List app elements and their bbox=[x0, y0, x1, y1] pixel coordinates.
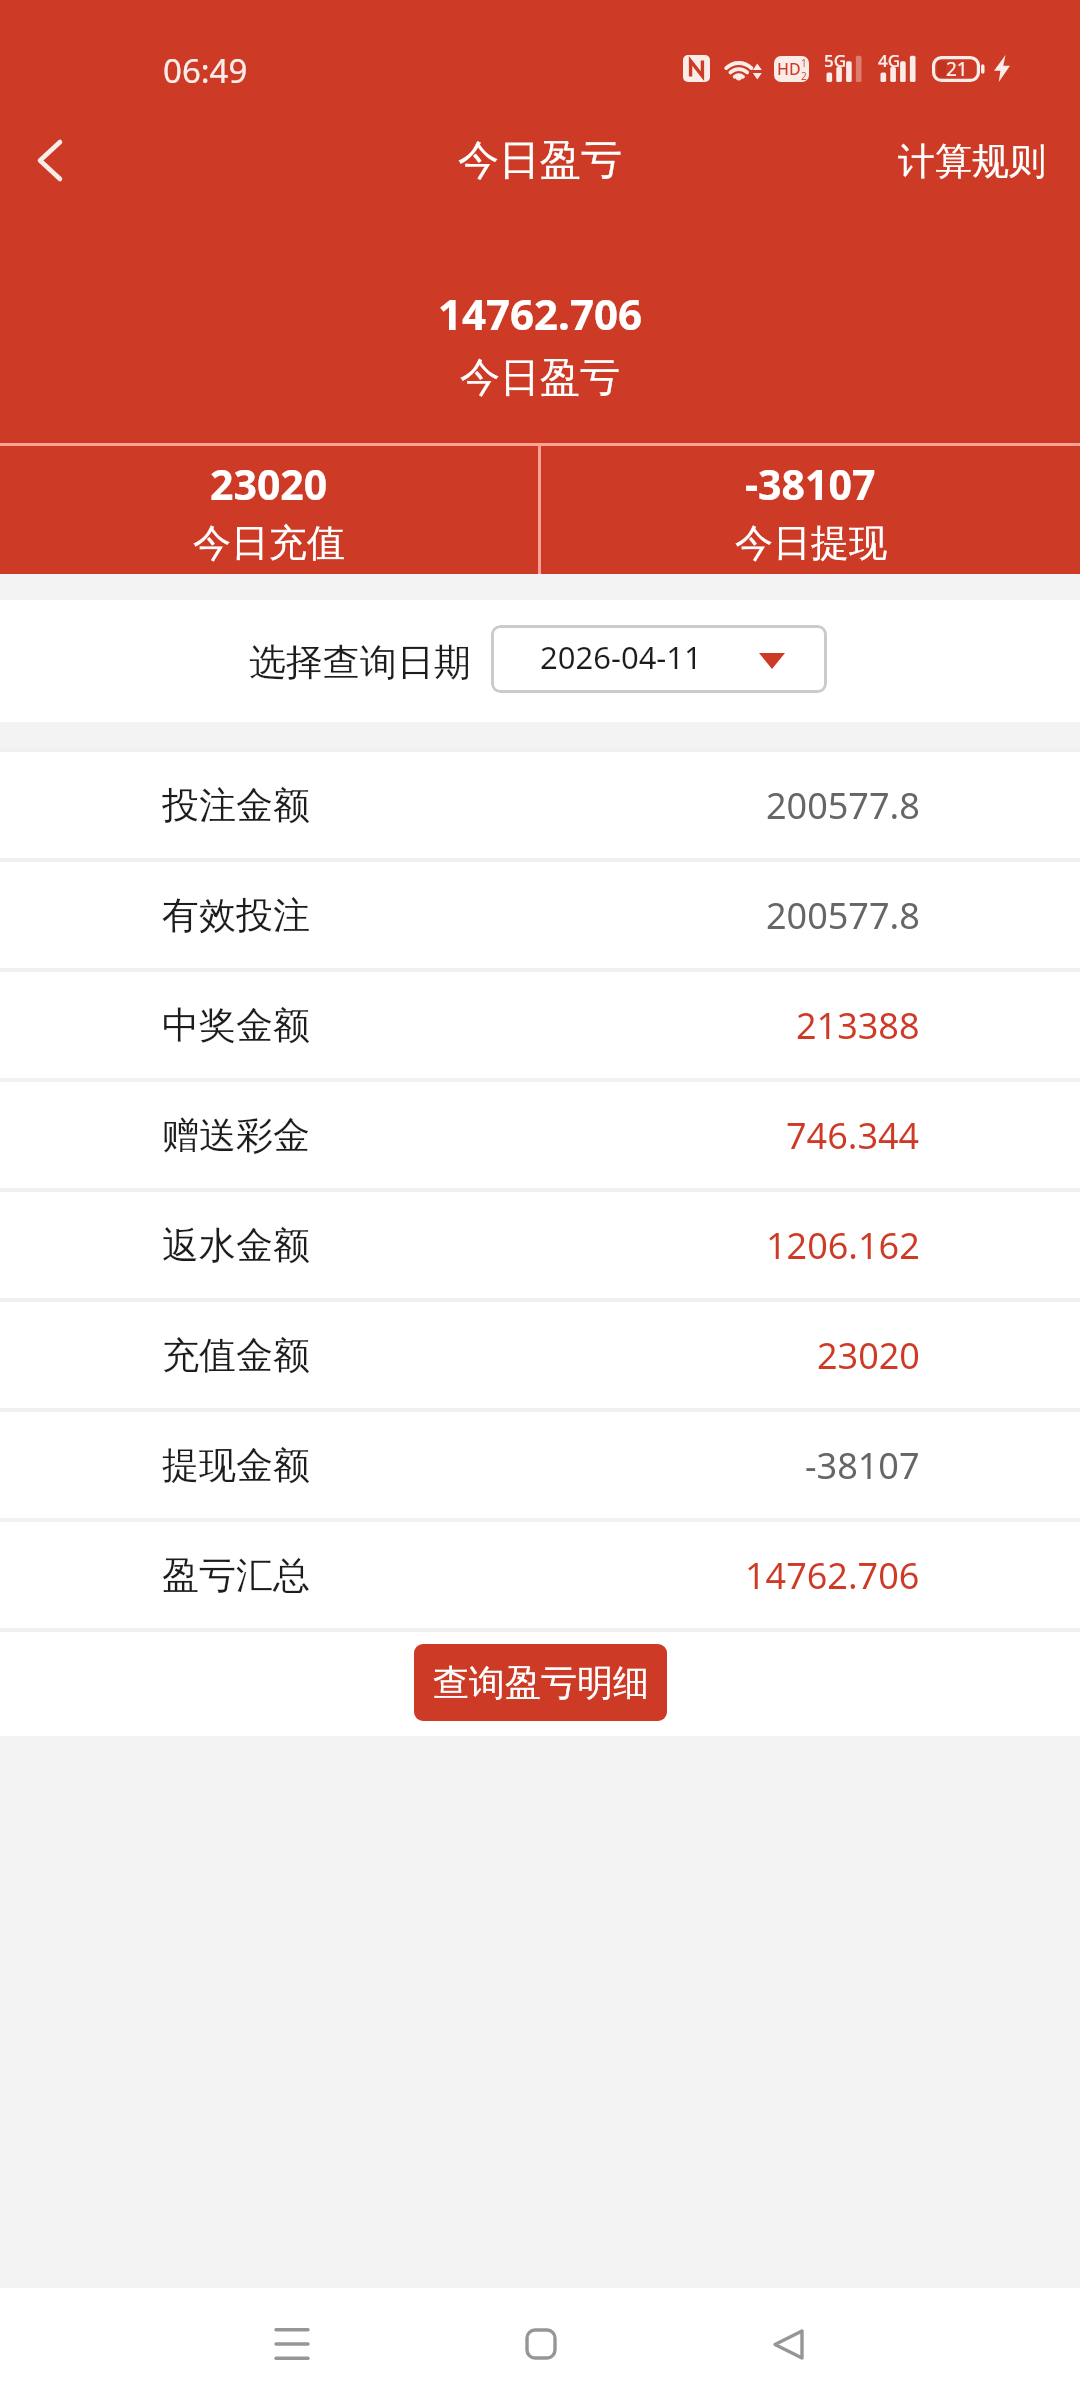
button[interactable]: 计算规则 bbox=[898, 106, 1046, 216]
button[interactable]: -38107 bbox=[541, 446, 1080, 574]
staticText: 23020 bbox=[210, 456, 328, 512]
staticText: 有效投注 bbox=[162, 892, 310, 939]
staticText: 今日盈亏 bbox=[460, 352, 620, 402]
staticText: 23020 bbox=[817, 1331, 920, 1380]
button[interactable]: 2026-04-11 bbox=[491, 625, 827, 693]
staticText: 14762.706 bbox=[745, 1551, 920, 1600]
staticText: 投注金额 bbox=[162, 782, 310, 829]
staticText: -38107 bbox=[805, 1441, 920, 1490]
staticText: 选择查询日期 bbox=[249, 639, 471, 686]
staticText: 赠送彩金 bbox=[162, 1112, 310, 1159]
staticText: 1206.162 bbox=[766, 1221, 920, 1270]
button[interactable]: 充值金额 bbox=[0, 1302, 1080, 1408]
button[interactable]: Back bbox=[733, 2288, 843, 2400]
button[interactable]: 返水金额 bbox=[0, 1192, 1080, 1298]
button[interactable]: 提现金额 bbox=[0, 1412, 1080, 1518]
staticText: 返水金额 bbox=[162, 1222, 310, 1269]
staticText: 213388 bbox=[796, 1001, 920, 1050]
button[interactable]: Back bbox=[0, 105, 100, 215]
staticText: 计算规则 bbox=[898, 138, 1046, 185]
staticText: 21 bbox=[946, 56, 968, 82]
staticText: 今日提现 bbox=[735, 519, 887, 567]
staticText: 14762.706 bbox=[438, 285, 642, 342]
button[interactable]: Recent apps bbox=[237, 2288, 347, 2400]
staticText: 今日盈亏 bbox=[458, 135, 622, 187]
staticText: -38107 bbox=[745, 456, 876, 512]
staticText: 查询盈亏明细 bbox=[433, 1660, 649, 1705]
button[interactable]: 有效投注 bbox=[0, 862, 1080, 968]
staticText: HD bbox=[777, 58, 801, 80]
staticText: 06:49 bbox=[163, 48, 248, 93]
staticText: 2 bbox=[801, 69, 807, 82]
button[interactable]: 中奖金额 bbox=[0, 972, 1080, 1078]
button[interactable]: 投注金额 bbox=[0, 752, 1080, 858]
staticText: 提现金额 bbox=[162, 1442, 310, 1489]
staticText: 5G bbox=[824, 49, 847, 72]
staticText: 中奖金额 bbox=[162, 1002, 310, 1049]
staticText: 今日充值 bbox=[193, 519, 345, 567]
button[interactable]: 赠送彩金 bbox=[0, 1082, 1080, 1188]
staticText: 4G bbox=[878, 49, 901, 72]
button[interactable]: 盈亏汇总 bbox=[0, 1522, 1080, 1628]
staticText: 充值金额 bbox=[162, 1332, 310, 1379]
button[interactable]: 查询盈亏明细 bbox=[414, 1644, 667, 1721]
button[interactable]: Home bbox=[486, 2288, 596, 2400]
staticText: 200577.8 bbox=[766, 891, 920, 940]
staticText: 盈亏汇总 bbox=[162, 1552, 310, 1599]
staticText: 2026-04-11 bbox=[540, 636, 702, 678]
staticText: 200577.8 bbox=[766, 781, 920, 830]
staticText: 746.344 bbox=[786, 1111, 920, 1160]
button[interactable]: 23020 bbox=[0, 446, 538, 574]
staticText: 1 bbox=[801, 56, 807, 70]
